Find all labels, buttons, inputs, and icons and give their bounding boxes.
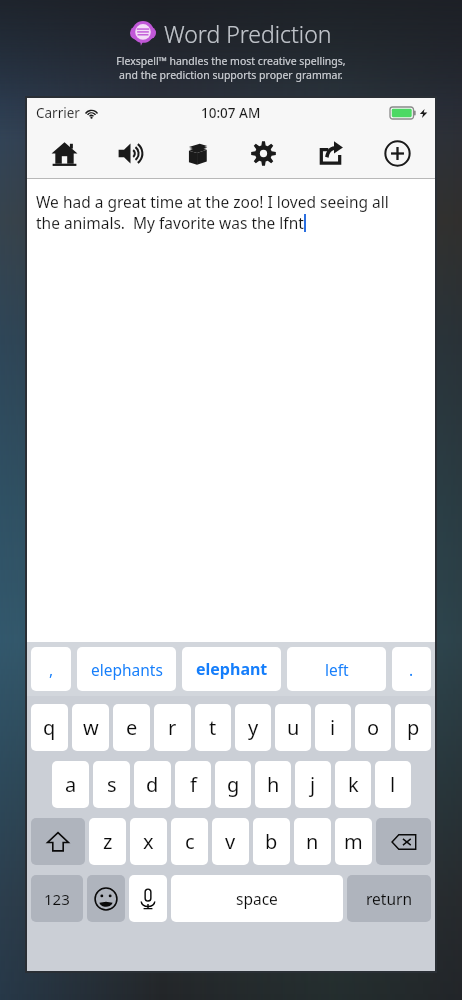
button[interactable]: Library (163, 127, 230, 179)
button[interactable]: Add (364, 127, 431, 179)
staticText: r (168, 714, 177, 741)
button[interactable]: p (395, 704, 431, 751)
staticText: l (390, 771, 396, 798)
button[interactable]: Speak (97, 127, 163, 179)
button[interactable]: We had a great time at the zoo! I loved … (27, 179, 435, 642)
staticText: a (65, 771, 77, 798)
staticText: return (366, 888, 412, 909)
staticText: and the prediction supports proper gramm… (119, 68, 343, 82)
button[interactable]: left (287, 647, 386, 691)
button[interactable]: v (212, 818, 249, 865)
button[interactable]: Emoji (87, 875, 125, 922)
button[interactable]: b (253, 818, 290, 865)
button[interactable]: k (335, 761, 371, 808)
staticText: d (146, 771, 159, 798)
button[interactable]: Share (297, 127, 364, 179)
staticText: q (43, 714, 56, 741)
staticText: z (103, 828, 113, 855)
button[interactable]: d (134, 761, 171, 808)
button[interactable]: a (52, 761, 89, 808)
staticText: j (310, 771, 316, 798)
staticText: e (126, 714, 138, 741)
staticText: b (265, 828, 278, 855)
staticText: g (227, 771, 240, 798)
button[interactable]: elephant (182, 647, 281, 691)
staticText: 10:07 AM (201, 104, 261, 122)
staticText: . (409, 659, 414, 680)
button[interactable]: h (255, 761, 291, 808)
button[interactable]: q (31, 704, 68, 751)
staticText: Carrier (36, 104, 80, 122)
button[interactable]: f (175, 761, 211, 808)
staticText: Word Prediction (164, 18, 332, 49)
button[interactable]: Backspace (376, 818, 431, 865)
staticText: o (367, 714, 380, 741)
staticText: x (143, 828, 154, 855)
button[interactable]: u (275, 704, 311, 751)
button[interactable]: c (171, 818, 208, 865)
staticText: i (330, 714, 336, 741)
button[interactable]: j (295, 761, 331, 808)
staticText: 123 (44, 889, 70, 909)
staticText: y (248, 714, 259, 741)
button[interactable]: 123 (31, 875, 83, 922)
button[interactable]: g (215, 761, 251, 808)
button[interactable]: Shift (31, 818, 85, 865)
button[interactable]: x (130, 818, 167, 865)
button[interactable]: l (375, 761, 411, 808)
staticText: Flexspell™ handles the most creative spe… (116, 54, 346, 68)
staticText: space (236, 888, 278, 909)
staticText: m (344, 828, 363, 855)
button[interactable]: o (355, 704, 391, 751)
button[interactable]: w (72, 704, 109, 751)
staticText: n (306, 828, 319, 855)
button[interactable]: r (154, 704, 191, 751)
staticText: left (325, 659, 349, 680)
staticText: elephant (196, 658, 268, 680)
staticText: p (407, 714, 420, 741)
button[interactable]: z (89, 818, 126, 865)
button[interactable]: t (195, 704, 231, 751)
button[interactable]: elephants (77, 647, 176, 691)
staticText: v (225, 828, 236, 855)
staticText: , (49, 659, 54, 680)
staticText: f (190, 771, 197, 798)
button[interactable]: e (113, 704, 150, 751)
button[interactable]: , (31, 647, 71, 691)
button[interactable]: y (235, 704, 271, 751)
staticText: h (267, 771, 280, 798)
staticText: c (185, 828, 195, 855)
staticText: We had a great time at the zoo! I loved … (36, 191, 389, 212)
staticText: s (107, 771, 117, 798)
button[interactable]: . (392, 647, 431, 691)
button[interactable]: s (93, 761, 130, 808)
button[interactable]: return (347, 875, 431, 922)
button[interactable]: Settings (230, 127, 297, 179)
button[interactable]: Dictation (129, 875, 167, 922)
button[interactable]: n (294, 818, 331, 865)
button[interactable]: Home (31, 127, 97, 179)
staticText: the animals. My favorite was the lfnt (36, 212, 304, 233)
staticText: t (209, 714, 217, 741)
staticText: elephants (91, 659, 163, 680)
button[interactable]: space (171, 875, 343, 922)
staticText: w (83, 714, 99, 741)
button[interactable]: i (315, 704, 351, 751)
button[interactable]: m (335, 818, 372, 865)
staticText: u (287, 714, 300, 741)
staticText: k (348, 771, 359, 798)
